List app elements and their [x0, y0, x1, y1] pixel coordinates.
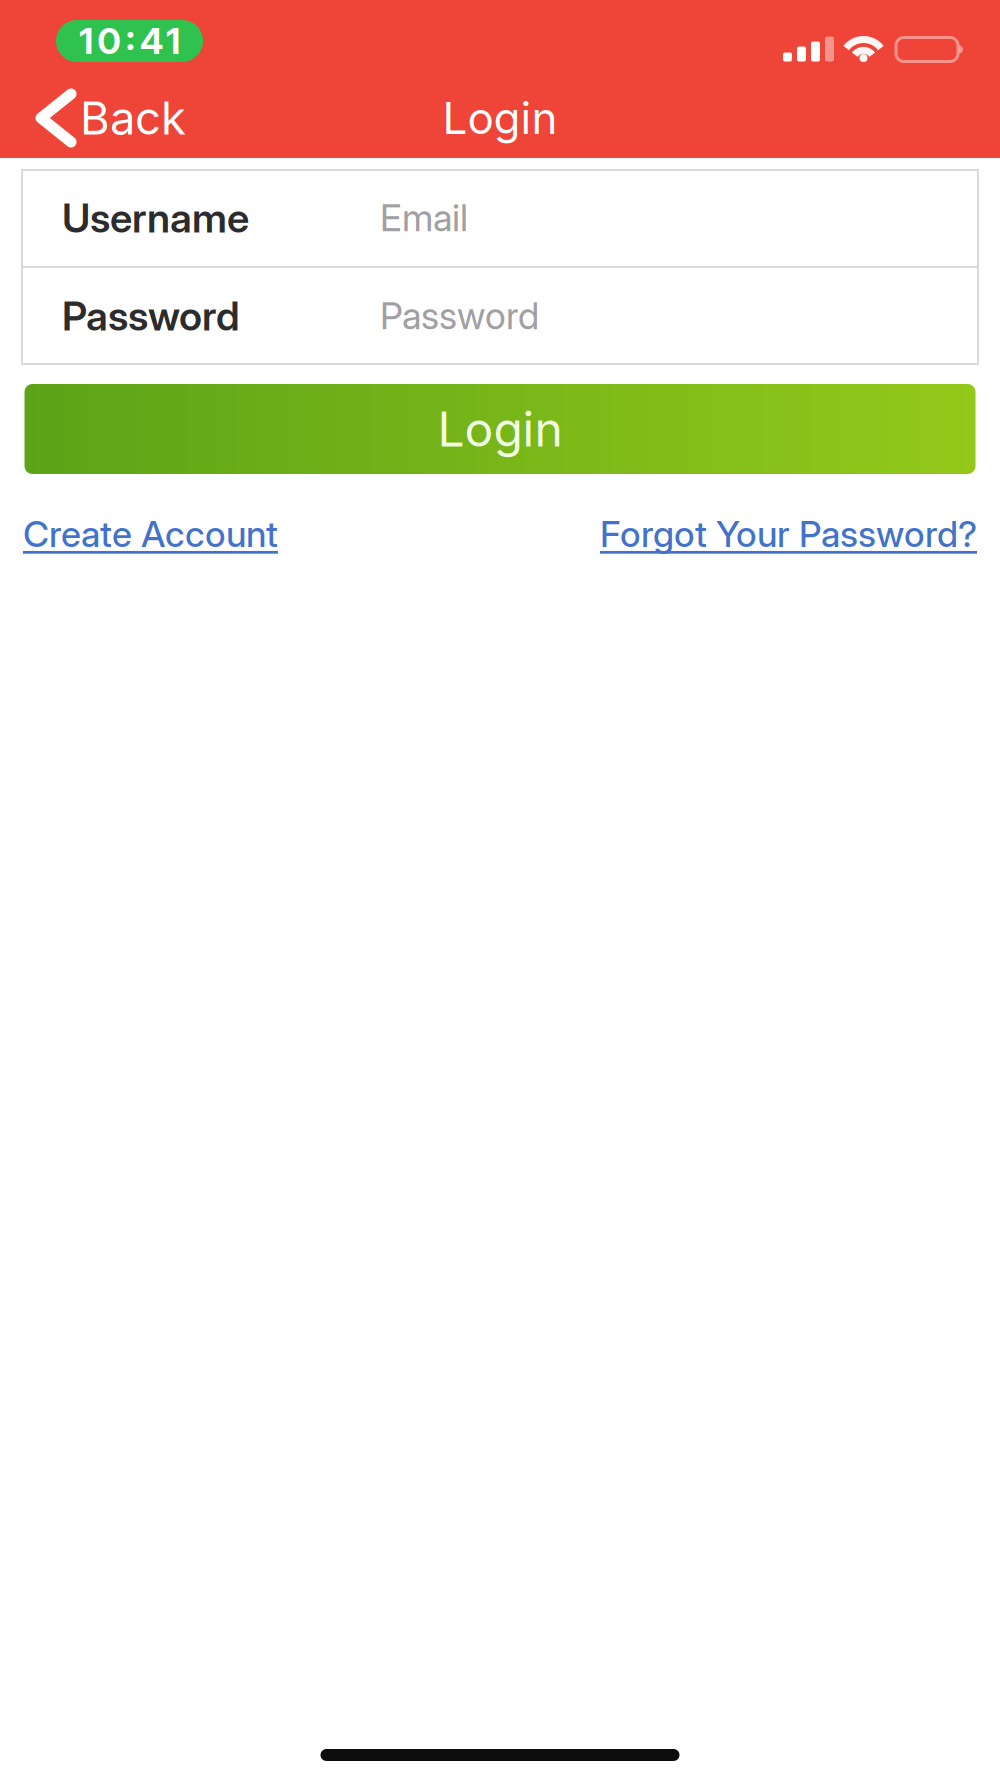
staticText: Login [442, 91, 557, 145]
staticText: Email [380, 196, 468, 240]
staticText: Forgot Your Password? [600, 512, 977, 556]
staticText: Login [437, 400, 562, 458]
staticText: Password [62, 292, 240, 340]
staticText: Username [62, 194, 249, 242]
button[interactable]: Back [0, 81, 208, 155]
button[interactable]: Password [22, 268, 978, 364]
staticText: Create Account [23, 512, 278, 556]
staticText: 10:41 [79, 19, 180, 63]
staticText: Password [380, 294, 539, 338]
button[interactable]: Login [24, 384, 975, 474]
button[interactable]: Create Account [23, 512, 278, 556]
button[interactable]: Forgot Your Password? [600, 512, 977, 556]
staticText: Back [80, 91, 186, 145]
button[interactable]: Username [22, 170, 978, 266]
